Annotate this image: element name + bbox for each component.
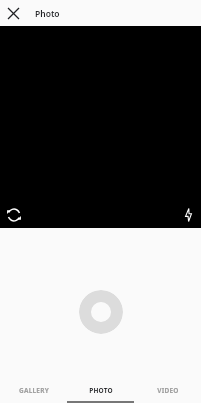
button[interactable]: GALLERY xyxy=(0,375,67,403)
button[interactable]: PHOTO xyxy=(67,375,134,403)
button[interactable]: Close xyxy=(0,0,26,26)
staticText: VIDEO xyxy=(157,386,179,395)
button[interactable]: Flash xyxy=(176,203,200,227)
staticText: GALLERY xyxy=(19,386,49,395)
button[interactable]: VIDEO xyxy=(134,375,201,403)
button[interactable]: Switch camera xyxy=(2,203,26,227)
staticText: PHOTO xyxy=(89,386,113,395)
button[interactable]: Take photo xyxy=(79,290,123,334)
staticText: Photo xyxy=(35,8,60,20)
